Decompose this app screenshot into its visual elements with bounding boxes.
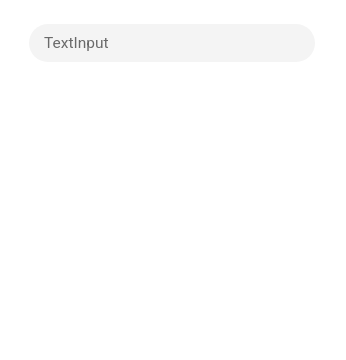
staticText: TextInput (44, 34, 109, 52)
button[interactable]: Text input field (29, 24, 315, 62)
